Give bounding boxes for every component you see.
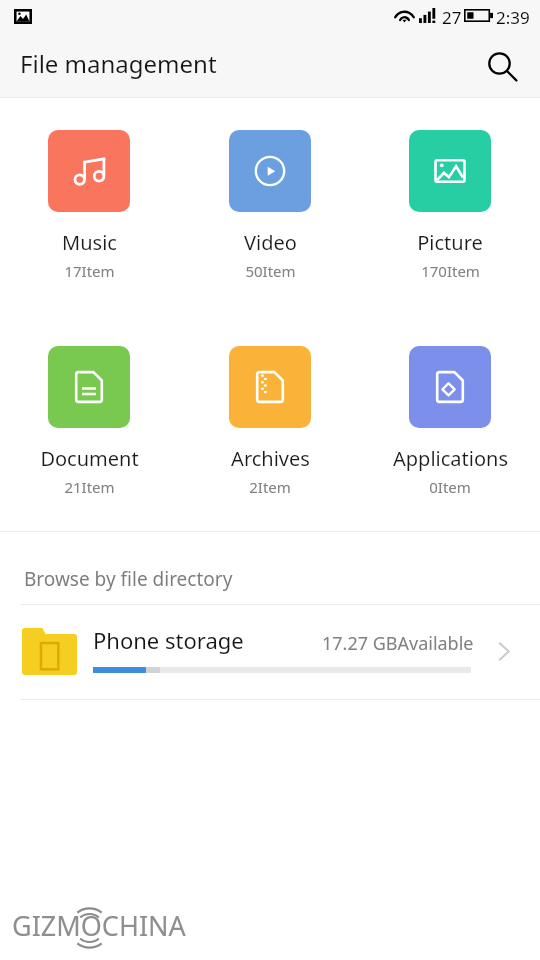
staticText: 0Item [429,477,471,497]
button[interactable]: Video [180,130,360,281]
staticText: 21Item [64,477,115,497]
staticText: 2:39 [496,6,530,29]
staticText: Applications [393,445,508,472]
button[interactable]: Music [0,130,179,281]
staticText: File management [20,47,217,80]
button[interactable]: Applications [360,346,540,497]
staticText: 2Item [249,477,291,497]
staticText: Video [244,229,297,256]
staticText: Picture [417,229,483,256]
button[interactable]: Archives [180,346,360,497]
button[interactable]: Picture [360,130,540,281]
button[interactable]: Search [470,38,526,94]
staticText: GIZMOCHINA [12,907,186,944]
staticText: Archives [231,445,310,472]
staticText: 27 [442,6,462,29]
staticText: 170Item [421,261,480,281]
staticText: 17Item [64,261,115,281]
staticText: Music [62,229,117,256]
staticText: 50Item [245,261,296,281]
staticText: Document [40,445,139,472]
button[interactable]: Phone storage [0,606,540,692]
staticText: Browse by file directory [24,566,233,592]
staticText: Phone storage [93,625,244,655]
button[interactable]: Document [0,346,179,497]
staticText: 17.27 GBAvailable [322,631,474,656]
